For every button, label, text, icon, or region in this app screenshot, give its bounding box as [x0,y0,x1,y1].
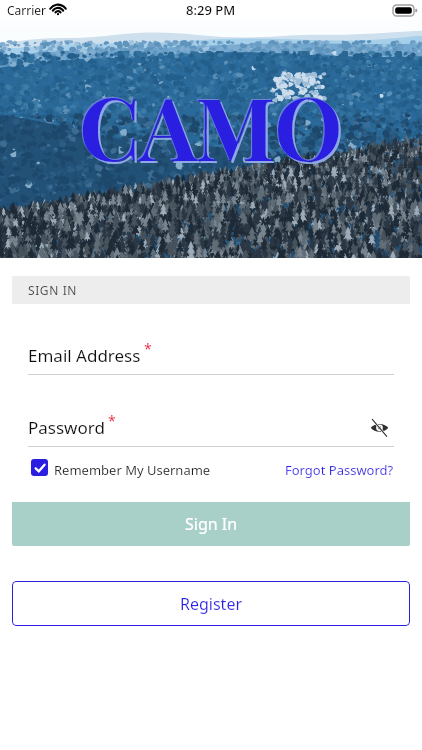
staticText: Password [28,416,105,439]
staticText: CAMO [78,67,342,182]
button[interactable]: Sign In [12,502,410,546]
staticText: SIGN IN [28,282,78,298]
button[interactable]: Register [12,581,410,626]
staticText: Email Address [28,344,141,367]
button[interactable]: Forgot Password? [285,457,394,483]
button[interactable]: Show password [367,415,391,439]
staticText: Register [180,593,243,615]
staticText: 8:29 PM [186,1,236,19]
staticText: Carrier [7,2,47,18]
staticText: Sign In [185,513,238,535]
staticText: * [108,411,116,430]
staticText: CAMO [81,70,345,185]
button[interactable]: Remember My Username [28,457,211,483]
staticText: CAMO [79,68,343,183]
staticText: Remember My Username [54,461,211,479]
staticText: * [144,339,152,358]
